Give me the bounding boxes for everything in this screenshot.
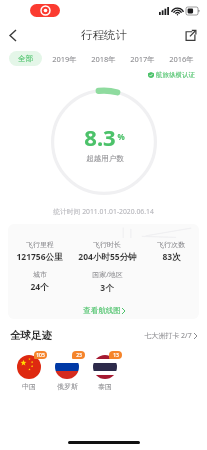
staticText: 全球足迹 xyxy=(10,329,52,342)
staticText: 俄罗斯 xyxy=(57,382,78,391)
staticText: 超越用户数 xyxy=(86,154,124,163)
button[interactable]: 中国 xyxy=(10,351,48,379)
staticText: 2016年 xyxy=(169,54,194,64)
staticText: 泰国 xyxy=(98,382,112,391)
staticText: 七大洲打卡 2/7 xyxy=(144,331,192,341)
staticText: 航旅纵横认证 xyxy=(156,71,195,79)
staticText: 2017年 xyxy=(130,54,155,64)
staticText: 83次 xyxy=(162,251,181,263)
button[interactable]: 航旅纵横认证 xyxy=(148,71,195,79)
button[interactable]: 泰国 xyxy=(86,351,123,379)
button[interactable]: 查看航线图 xyxy=(8,302,199,319)
staticText: 13 xyxy=(113,352,119,359)
staticText: % xyxy=(117,131,125,142)
staticText: 全部 xyxy=(18,54,33,63)
staticText: 23 xyxy=(76,352,82,359)
staticText: 3个 xyxy=(100,282,114,294)
button[interactable]: Share xyxy=(178,23,202,47)
staticText: 飞行次数 xyxy=(157,240,185,249)
button[interactable]: 2017年 xyxy=(126,51,159,66)
button[interactable]: Back xyxy=(0,22,26,48)
staticText: 24个 xyxy=(30,281,49,293)
staticText: 204小时55分钟 xyxy=(78,251,137,263)
button[interactable]: 七大洲打卡 2/7 xyxy=(144,331,197,341)
staticText: 查看航线图 xyxy=(83,306,121,315)
button[interactable]: 全部 xyxy=(9,51,42,66)
staticText: 飞行时长 xyxy=(93,240,121,249)
staticText: 国家/地区 xyxy=(92,270,123,280)
staticText: 飞行里程 xyxy=(26,240,54,249)
button[interactable]: 飞行里程 xyxy=(8,224,199,319)
staticText: 8.3 xyxy=(84,122,116,152)
button[interactable]: 2016年 xyxy=(165,51,198,66)
staticText: 统计时间 2011.01.01-2020.06.14 xyxy=(53,207,154,216)
staticText: 2018年 xyxy=(91,54,116,64)
staticText: 行程统计 xyxy=(81,28,127,42)
button[interactable]: 2019年 xyxy=(48,51,81,66)
staticText: 105 xyxy=(36,352,45,359)
button[interactable]: 2018年 xyxy=(87,51,120,66)
button[interactable]: 俄罗斯 xyxy=(48,351,86,379)
staticText: 2019年 xyxy=(52,54,77,64)
staticText: 中国 xyxy=(22,382,36,391)
staticText: 城市 xyxy=(33,270,47,279)
staticText: 121756公里 xyxy=(16,251,63,263)
